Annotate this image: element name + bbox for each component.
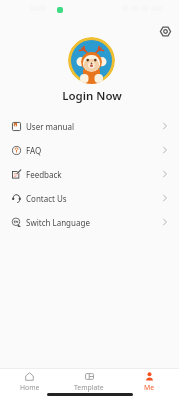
staticText: User manual xyxy=(26,121,74,132)
button[interactable]: Me xyxy=(119,369,179,392)
staticText: Template xyxy=(74,383,104,392)
button[interactable]: Settings xyxy=(155,21,175,41)
staticText: Me xyxy=(144,383,154,392)
button[interactable]: Switch Language xyxy=(0,210,179,234)
button[interactable]: FAQ xyxy=(0,138,179,162)
staticText: Login Now xyxy=(62,88,122,104)
button[interactable]: Login Now xyxy=(2,88,179,104)
button[interactable]: User manual xyxy=(0,114,179,138)
staticText: FAQ xyxy=(26,145,42,156)
staticText: Switch Language xyxy=(26,217,90,228)
button[interactable]: Contact Us xyxy=(0,186,179,210)
button[interactable]: Home xyxy=(0,369,59,392)
button[interactable]: Template xyxy=(59,369,119,392)
staticText: Feedback xyxy=(26,169,62,180)
button[interactable]: Feedback xyxy=(0,162,179,186)
staticText: Home xyxy=(20,383,40,392)
staticText: Contact Us xyxy=(26,193,67,204)
